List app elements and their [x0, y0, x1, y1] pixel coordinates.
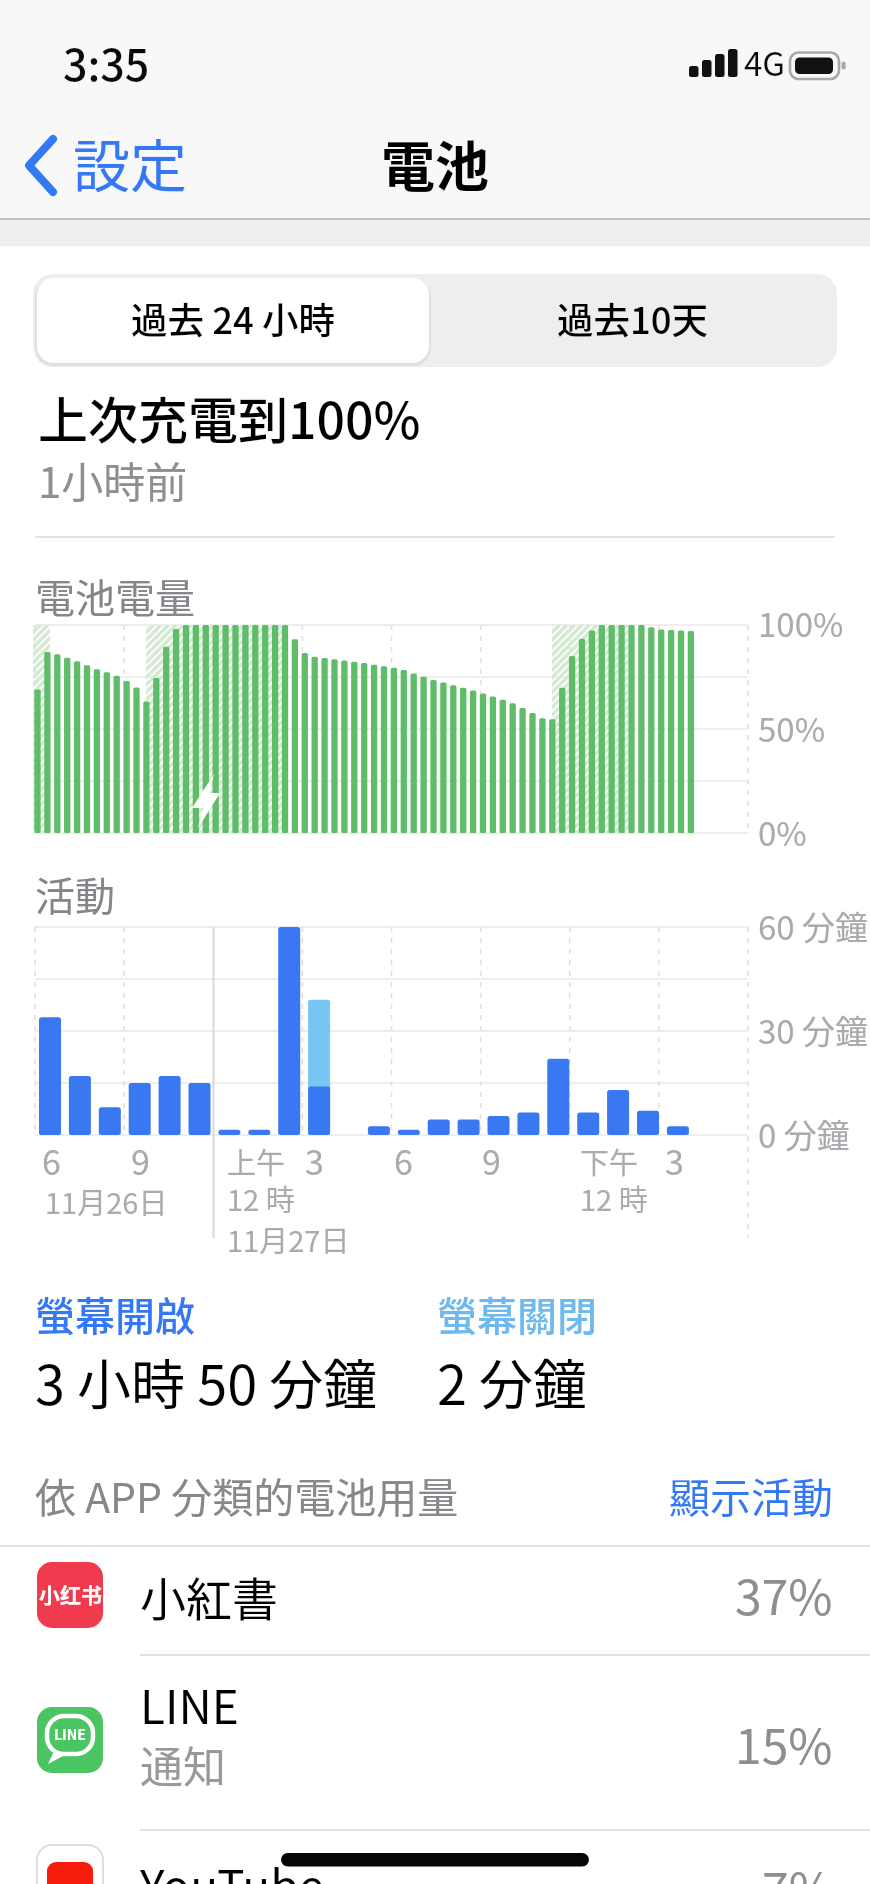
staticText: 螢幕開啟: [35, 1285, 195, 1343]
staticText: 60 分鐘: [758, 902, 869, 950]
staticText: 6: [394, 1136, 413, 1185]
staticText: 2 分鐘: [437, 1342, 588, 1420]
staticText: 活動: [35, 865, 115, 923]
staticText: 50%: [758, 704, 826, 752]
staticText: 電池電量: [35, 567, 195, 625]
staticText: 12 時: [580, 1177, 648, 1219]
staticText: 11月27日: [227, 1218, 350, 1260]
staticText: 3:35: [63, 31, 150, 93]
staticText: 37%: [735, 1559, 833, 1629]
staticText: 顯示活動: [669, 1465, 833, 1524]
staticText: 6: [42, 1136, 61, 1185]
staticText: 小紅書: [140, 1563, 278, 1630]
staticText: 15%: [735, 1708, 833, 1778]
staticText: 3: [305, 1136, 324, 1185]
staticText: 30 分鐘: [758, 1006, 869, 1054]
staticText: 上午: [227, 1140, 286, 1182]
button[interactable]: [429, 278, 833, 363]
staticText: 11月26日: [45, 1180, 168, 1222]
staticText: 9: [131, 1136, 150, 1185]
staticText: 3 小時 50 分鐘: [35, 1342, 378, 1420]
staticText: 0 分鐘: [758, 1110, 850, 1158]
staticText: YouTube: [140, 1851, 325, 1884]
button[interactable]: [20, 130, 270, 200]
staticText: 電池: [381, 124, 489, 202]
staticText: 上次充電到100%: [38, 381, 421, 453]
staticText: LINE: [54, 1724, 86, 1744]
staticText: 100%: [758, 599, 844, 647]
staticText: 下午: [580, 1140, 639, 1182]
staticText: 7%: [762, 1852, 833, 1884]
button[interactable]: [37, 278, 429, 363]
staticText: LINE: [140, 1671, 239, 1738]
staticText: 小红书: [39, 1579, 102, 1609]
button[interactable]: [0, 1656, 870, 1830]
staticText: 過去 24 小時: [131, 292, 336, 345]
staticText: 通知: [140, 1733, 226, 1795]
staticText: 螢幕關閉: [437, 1285, 597, 1343]
staticText: 12 時: [227, 1177, 295, 1219]
staticText: 設定: [73, 121, 187, 204]
staticText: 1小時前: [38, 449, 188, 510]
button[interactable]: [0, 1547, 870, 1655]
button[interactable]: [660, 1470, 840, 1525]
staticText: 0%: [758, 808, 807, 856]
staticText: 4G: [744, 38, 786, 86]
staticText: 依 APP 分類的電池用量: [35, 1465, 459, 1524]
staticText: 9: [482, 1136, 501, 1185]
staticText: 過去10天: [557, 292, 709, 345]
staticText: 3: [665, 1136, 684, 1185]
